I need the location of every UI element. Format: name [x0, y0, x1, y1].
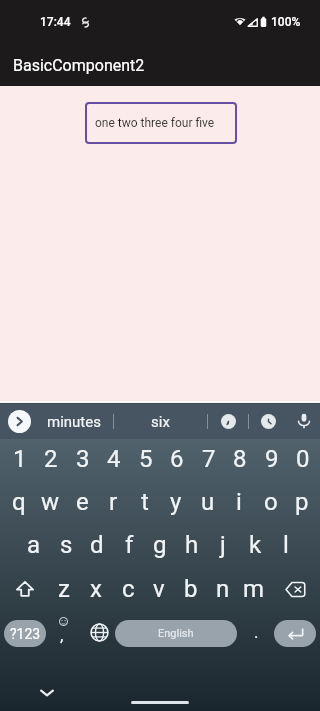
staticText: w [41, 488, 60, 516]
button[interactable]: x [80, 569, 112, 609]
staticText: 100% [271, 15, 301, 29]
button[interactable]: 7 [193, 440, 225, 478]
staticText: k [249, 531, 262, 559]
staticText: s [60, 531, 73, 559]
button[interactable]: o [255, 482, 287, 522]
staticText: 2 [44, 445, 58, 473]
staticText: v [153, 575, 165, 603]
staticText: j [220, 531, 226, 559]
staticText: x [90, 575, 102, 603]
button[interactable]: g [144, 525, 176, 565]
button[interactable]: 0 [287, 440, 319, 478]
button[interactable]: a [18, 525, 50, 565]
button[interactable]: e [66, 482, 98, 522]
staticText: m [243, 575, 265, 603]
button[interactable]: 8 [224, 440, 256, 478]
button[interactable]: w [34, 482, 66, 522]
staticText: 3 [76, 445, 90, 473]
button[interactable]: q [3, 482, 35, 522]
staticText: 7 [202, 445, 216, 473]
button[interactable]: Enter [274, 620, 316, 647]
button[interactable]: 3 [67, 440, 99, 478]
button[interactable]: Voice input [291, 408, 317, 434]
button[interactable]: v [143, 569, 175, 609]
staticText: n [216, 575, 230, 603]
staticText: h [185, 531, 199, 559]
staticText: l [283, 531, 289, 559]
button[interactable]: one two three four five [85, 102, 237, 144]
staticText: f [125, 531, 134, 559]
staticText: 1 [13, 445, 27, 473]
staticText: t [141, 488, 149, 516]
staticText: u [201, 488, 215, 516]
button[interactable]: ?123 [4, 620, 46, 647]
button[interactable]: n [207, 569, 239, 609]
button[interactable]: r [97, 482, 129, 522]
button[interactable]: Period [243, 615, 269, 649]
button[interactable]: Change language [82, 615, 116, 649]
button[interactable]: z [48, 569, 80, 609]
button[interactable]: 4 [98, 440, 130, 478]
button[interactable]: b [175, 569, 207, 609]
staticText: e [76, 488, 89, 516]
button[interactable]: Shift [9, 569, 41, 609]
staticText: , [60, 625, 64, 645]
button[interactable]: s [50, 525, 82, 565]
staticText: z [58, 575, 70, 603]
button[interactable]: 6 [161, 440, 193, 478]
button[interactable]: k [239, 525, 271, 565]
staticText: d [90, 531, 104, 559]
staticText: c [122, 575, 135, 603]
staticText: 4 [107, 445, 121, 473]
staticText: six [151, 413, 170, 431]
staticText: minutes [47, 413, 101, 431]
staticText: BasicComponent2 [13, 56, 145, 75]
staticText: g [153, 531, 167, 559]
button[interactable]: d [81, 525, 113, 565]
button[interactable]: u [192, 482, 224, 522]
staticText: . [254, 622, 259, 642]
button[interactable]: m [238, 569, 270, 609]
staticText: one two three four five [95, 116, 215, 130]
staticText: o [264, 488, 278, 516]
staticText: ?123 [10, 626, 41, 642]
button[interactable]: h [176, 525, 208, 565]
button[interactable]: 2 [35, 440, 67, 478]
button[interactable]: 9 [256, 440, 288, 478]
button[interactable]: l [270, 525, 302, 565]
staticText: 8 [233, 445, 247, 473]
button[interactable]: Clock suggestion [215, 408, 241, 434]
button[interactable]: j [207, 525, 239, 565]
staticText: y [170, 488, 182, 516]
button[interactable]: i [223, 482, 255, 522]
button[interactable]: minutes [36, 404, 112, 439]
button[interactable]: Comma [51, 612, 79, 652]
button[interactable]: English [115, 620, 237, 647]
staticText: a [27, 531, 41, 559]
staticText: 5 [139, 445, 153, 473]
staticText: 9 [265, 445, 279, 473]
button[interactable]: p [286, 482, 318, 522]
button[interactable]: Expand suggestions [8, 410, 31, 433]
staticText: b [184, 575, 198, 603]
staticText: 17:44 [40, 15, 71, 29]
button[interactable]: t [129, 482, 161, 522]
button[interactable]: Backspace [279, 569, 311, 609]
button[interactable]: 5 [130, 440, 162, 478]
staticText: English [158, 627, 194, 640]
staticText: r [109, 488, 118, 516]
button[interactable]: 1 [4, 440, 36, 478]
button[interactable]: f [113, 525, 145, 565]
button[interactable]: y [160, 482, 192, 522]
staticText: i [236, 488, 242, 516]
button[interactable]: Hide keyboard [33, 679, 61, 707]
staticText: p [295, 488, 309, 516]
button[interactable]: Second clock suggestion [255, 408, 281, 434]
button[interactable]: six [128, 404, 192, 439]
staticText: 6 [170, 445, 184, 473]
staticText: 0 [296, 445, 310, 473]
button[interactable]: c [112, 569, 144, 609]
staticText: q [12, 488, 26, 516]
